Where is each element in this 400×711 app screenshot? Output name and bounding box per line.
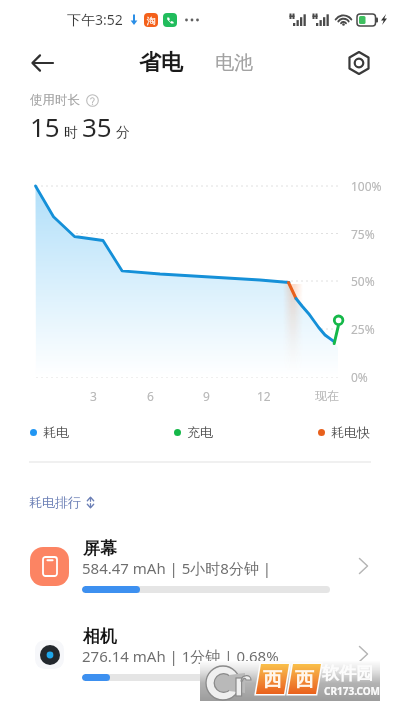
- staticText: 西: [295, 668, 314, 692]
- staticText: 现在: [315, 388, 339, 403]
- staticText: 9: [203, 388, 210, 404]
- button[interactable]: 耗电排行: [29, 494, 95, 510]
- staticText: 淘: [147, 15, 156, 26]
- staticText: 软件园: [322, 663, 373, 684]
- staticText: 100%: [351, 178, 382, 194]
- staticText: 时: [64, 124, 78, 142]
- staticText: 分: [116, 124, 130, 142]
- staticText: 50%: [351, 273, 375, 289]
- staticText: 75%: [351, 226, 375, 242]
- button[interactable]: 省电: [139, 49, 183, 77]
- staticText: 充电: [187, 424, 213, 440]
- staticText: 下午3:52: [67, 10, 123, 29]
- button[interactable]: 屏幕: [0, 530, 400, 608]
- staticText: 电池: [215, 51, 253, 75]
- other: Details: [355, 643, 377, 665]
- button[interactable]: 相机: [0, 618, 400, 696]
- button[interactable]: Back: [20, 41, 64, 85]
- staticText: CR173.COM: [324, 684, 381, 698]
- staticText: 西: [263, 668, 282, 692]
- staticText: 省电: [139, 49, 183, 77]
- staticText: 12: [257, 388, 271, 404]
- staticText: 6: [147, 388, 154, 404]
- staticText: 25%: [351, 321, 375, 337]
- staticText: 使用时长: [30, 92, 80, 108]
- button[interactable]: 电池: [215, 51, 253, 75]
- staticText: 276.14 mAh | 1分钟 | 0.68%: [82, 646, 279, 666]
- staticText: 耗电: [43, 424, 69, 440]
- other: Details: [355, 555, 377, 577]
- button[interactable]: Settings: [339, 43, 379, 83]
- staticText: 3: [90, 388, 97, 404]
- staticText: 耗电排行: [29, 494, 81, 510]
- staticText: 0%: [351, 369, 368, 385]
- staticText: 15: [30, 109, 60, 144]
- staticText: 584.47 mAh | 5小时8分钟 |: [82, 558, 272, 578]
- staticText: 相机: [83, 626, 117, 647]
- staticText: 35: [82, 109, 112, 144]
- staticText: 屏幕: [83, 538, 117, 559]
- staticText: 耗电快: [331, 424, 370, 440]
